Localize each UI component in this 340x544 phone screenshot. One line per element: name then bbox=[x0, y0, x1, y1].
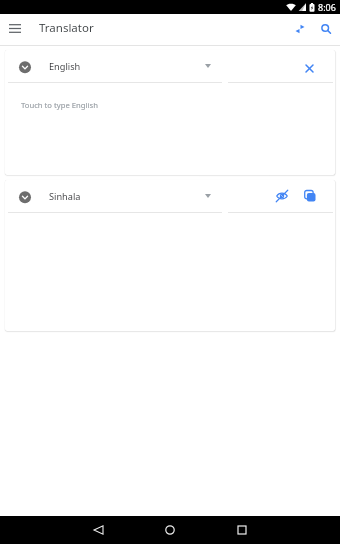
button[interactable]: Sinhala bbox=[5, 180, 222, 212]
button[interactable]: Back bbox=[84, 516, 112, 544]
button[interactable]: Search bbox=[312, 13, 340, 45]
staticText: Translator bbox=[39, 20, 94, 36]
button[interactable]: Recent apps bbox=[228, 516, 256, 544]
button[interactable]: Open navigation menu bbox=[0, 12, 30, 44]
button[interactable]: Compare translations bbox=[286, 13, 314, 45]
staticText: English bbox=[49, 60, 81, 73]
staticText: 8:06 bbox=[318, 1, 336, 13]
button[interactable]: Copy translation bbox=[296, 180, 324, 212]
button[interactable]: Hide translation bbox=[268, 180, 296, 212]
staticText: Touch to type English bbox=[21, 100, 98, 110]
button[interactable]: Home bbox=[156, 516, 184, 544]
button[interactable]: Touch to type English bbox=[5, 83, 335, 175]
staticText: Sinhala bbox=[49, 190, 81, 203]
button[interactable]: Clear text bbox=[295, 52, 323, 84]
button[interactable]: English bbox=[5, 50, 222, 82]
